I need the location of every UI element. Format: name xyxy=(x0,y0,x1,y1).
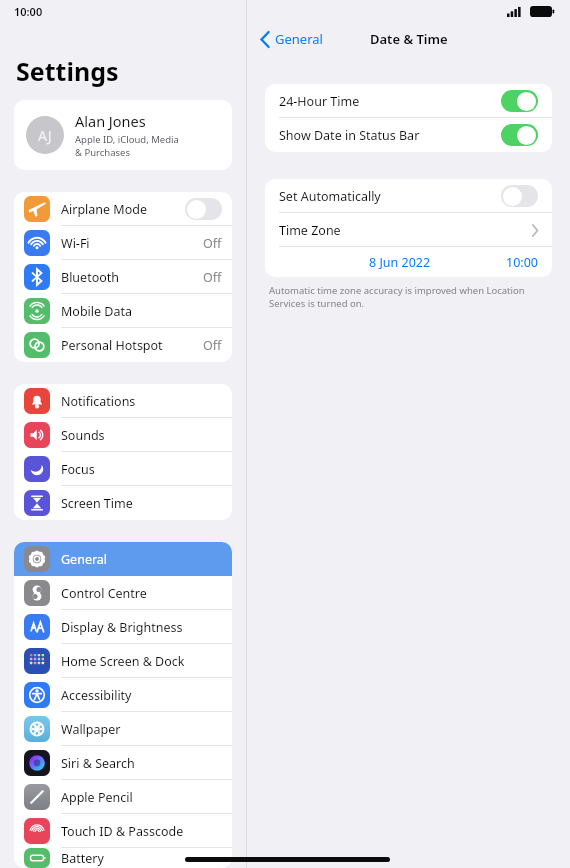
staticText: Wi-Fi xyxy=(61,235,90,252)
button[interactable]: Mobile Data xyxy=(14,294,232,328)
button[interactable]: AJ xyxy=(14,100,232,170)
staticText: Date & Time xyxy=(370,30,448,48)
staticText: Notifications xyxy=(61,393,136,410)
staticText: Battery xyxy=(61,850,104,867)
button[interactable]: Battery xyxy=(14,848,232,868)
button[interactable]: Off xyxy=(185,198,222,220)
button[interactable]: Touch ID & Passcode xyxy=(14,814,232,848)
staticText: Focus xyxy=(61,461,95,478)
button[interactable]: Sounds xyxy=(14,418,232,452)
button[interactable]: Accessibility xyxy=(14,678,232,712)
button[interactable]: General xyxy=(14,542,232,576)
staticText: Mobile Data xyxy=(61,303,133,320)
staticText: Accessibility xyxy=(61,687,132,704)
staticText: General xyxy=(275,30,323,48)
button[interactable]: Control Centre xyxy=(14,576,232,610)
staticText: Control Centre xyxy=(61,585,147,602)
staticText: AJ xyxy=(38,126,52,145)
staticText: 24-Hour Time xyxy=(279,93,501,110)
button[interactable]: Apple Pencil xyxy=(14,780,232,814)
button[interactable]: Display & Brightness xyxy=(14,610,232,644)
staticText: Bluetooth xyxy=(61,269,120,286)
staticText: Personal Hotspot xyxy=(61,337,163,354)
button[interactable]: General xyxy=(257,26,327,52)
staticText: Apple Pencil xyxy=(61,789,133,806)
staticText: Wallpaper xyxy=(61,721,121,738)
button[interactable]: Time Zone xyxy=(265,213,552,247)
button[interactable]: Bluetooth xyxy=(14,260,232,294)
staticText: & Purchases xyxy=(75,146,130,159)
button[interactable]: On xyxy=(501,124,538,146)
button[interactable]: 24-Hour Time xyxy=(265,84,552,118)
button[interactable]: Wallpaper xyxy=(14,712,232,746)
staticText: Off xyxy=(203,235,222,252)
button[interactable]: Wi-Fi xyxy=(14,226,232,260)
button[interactable]: Off xyxy=(501,185,538,207)
staticText: Apple ID, iCloud, Media xyxy=(75,133,179,146)
button[interactable]: Show Date in Status Bar xyxy=(265,118,552,152)
staticText: Airplane Mode xyxy=(61,201,147,218)
button[interactable]: Siri & Search xyxy=(14,746,232,780)
button[interactable]: Notifications xyxy=(14,384,232,418)
staticText: 10:00 xyxy=(506,254,538,271)
staticText: Touch ID & Passcode xyxy=(61,823,184,840)
button[interactable]: On xyxy=(501,90,538,112)
staticText: Home Screen & Dock xyxy=(61,653,185,670)
staticText: 8 Jun 2022 xyxy=(369,254,431,271)
staticText: Services is turned on. xyxy=(269,297,365,310)
button[interactable]: Personal Hotspot xyxy=(14,328,232,362)
staticText: 10:00 xyxy=(14,4,43,19)
staticText: Off xyxy=(203,269,222,286)
staticText: General xyxy=(61,551,108,568)
button[interactable]: Screen Time xyxy=(14,486,232,520)
staticText: Settings xyxy=(16,54,119,88)
staticText: Sounds xyxy=(61,427,105,444)
staticText: Alan Jones xyxy=(75,111,146,131)
button[interactable]: 8 Jun 2022 xyxy=(265,247,552,277)
button[interactable]: Set Automatically xyxy=(265,179,552,213)
button[interactable]: Airplane Mode xyxy=(14,192,232,226)
staticText: Screen Time xyxy=(61,495,133,512)
staticText: Automatic time zone accuracy is improved… xyxy=(269,284,525,297)
staticText: Siri & Search xyxy=(61,755,135,772)
button[interactable]: Focus xyxy=(14,452,232,486)
staticText: Show Date in Status Bar xyxy=(279,127,501,144)
button[interactable]: Home Screen & Dock xyxy=(14,644,232,678)
staticText: Display & Brightness xyxy=(61,619,183,636)
staticText: Set Automatically xyxy=(279,188,501,205)
staticText: Time Zone xyxy=(279,222,532,239)
staticText: Off xyxy=(203,337,222,354)
